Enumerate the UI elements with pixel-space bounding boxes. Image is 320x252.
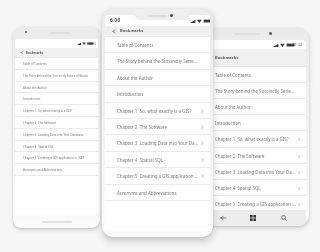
- staticText: Table of Contents: [117, 42, 198, 48]
- staticText: Chapter 5 Creating a GIS application i..…: [215, 201, 296, 207]
- staticText: Chapter 2 The Software: [215, 153, 296, 159]
- button[interactable]: Table of Contents: [105, 37, 210, 53]
- button[interactable]: Introduction: [15, 93, 98, 105]
- button[interactable]: Bookmarks: [15, 48, 98, 57]
- button[interactable]: Bookmarks: [105, 26, 210, 36]
- button[interactable]: Search: [276, 210, 292, 226]
- button[interactable]: Acronyms and Abbreviations: [200, 212, 306, 226]
- staticText: Acronyms and Abbreviations: [23, 168, 90, 172]
- staticText: Chapter 4 Spatial SQL: [215, 185, 296, 191]
- button[interactable]: Chapter 4 Spatial SQL: [15, 141, 98, 153]
- button[interactable]: Bookmarks: [200, 49, 306, 66]
- staticText: Chapter 4 Spatial SQL: [23, 145, 90, 149]
- staticText: Chapter 3 Loading Data into Your Dat...: [117, 140, 199, 146]
- staticText: Introduction: [117, 91, 198, 97]
- button[interactable]: Chapter 3 Loading Data into Your Dat...: [105, 135, 210, 151]
- button[interactable]: Chapter 5 Creating a GIS application i..…: [200, 196, 306, 212]
- staticText: About the Author: [23, 86, 90, 90]
- staticText: Chapter 1 So, what exactly is a GIS?: [117, 108, 199, 114]
- staticText: Table of Contents: [23, 62, 90, 66]
- button[interactable]: Back: [215, 210, 231, 226]
- button[interactable]: Chapter 2 The Software: [200, 148, 306, 164]
- button[interactable]: Chapter 4 Spatial SQL: [105, 152, 210, 168]
- staticText: Chapter 2 The Software: [23, 121, 90, 125]
- button[interactable]: The Story behind the Succinctly Series..…: [105, 53, 210, 69]
- button[interactable]: Table of Contents: [15, 58, 98, 70]
- button[interactable]: Acronyms and Abbreviations: [15, 164, 98, 176]
- staticText: Chapter 3 Loading Data into Your Dat...: [215, 169, 296, 175]
- staticText: Chapter 5 Creating a GIS application in …: [23, 156, 90, 160]
- button[interactable]: Acronyms and Abbreviations: [105, 185, 210, 201]
- button[interactable]: Chapter 4 Spatial SQL: [200, 180, 306, 196]
- staticText: 5:30: [90, 42, 96, 46]
- button[interactable]: Introduction: [105, 86, 210, 102]
- button[interactable]: Chapter 5 Creating a GIS application in …: [15, 152, 98, 164]
- staticText: Introduction: [23, 97, 90, 101]
- button[interactable]: The Story behind the Succinctly Series..…: [200, 83, 306, 99]
- staticText: Chapter 1 So, what exactly is a GIS?: [23, 109, 90, 113]
- staticText: Chapter 4 Spatial SQL: [117, 157, 199, 163]
- button[interactable]: Table of Contents: [200, 67, 306, 83]
- staticText: Bookmarks: [215, 55, 239, 61]
- staticText: Chapter 1 So, what exactly is a GIS?: [215, 136, 296, 142]
- staticText: Bookmarks: [26, 51, 44, 55]
- button[interactable]: Chapter 5 Creating a GIS application i..…: [105, 168, 210, 184]
- staticText: 17:32: [292, 42, 303, 48]
- staticText: The Story behind the Succinctly Series o…: [23, 74, 90, 78]
- button[interactable]: Home: [245, 210, 261, 226]
- button[interactable]: Chapter 2 The Software: [105, 119, 210, 135]
- button[interactable]: Chapter 1 So, what exactly is a GIS?: [200, 131, 306, 147]
- button[interactable]: Chapter 3 Loading Data into Your Databas…: [15, 129, 98, 141]
- staticText: The Story behind the Succinctly Series..…: [117, 58, 198, 64]
- button[interactable]: About the Author: [200, 99, 306, 115]
- staticText: Chapter 2 The Software: [117, 124, 199, 130]
- button[interactable]: Chapter 3 Loading Data into Your Dat...: [200, 164, 306, 180]
- staticText: About the Author: [117, 75, 198, 81]
- staticText: Acronyms and Abbreviations: [117, 190, 198, 196]
- staticText: 6.08: [110, 17, 121, 24]
- staticText: The Story behind the Succinctly Series..…: [215, 88, 295, 94]
- button[interactable]: Chapter 1 So, what exactly is a GIS?: [105, 103, 210, 119]
- button[interactable]: About the Author: [105, 70, 210, 86]
- button[interactable]: The Story behind the Succinctly Series o…: [15, 70, 98, 82]
- staticText: Table of Contents: [215, 72, 295, 78]
- button[interactable]: Chapter 1 So, what exactly is a GIS?: [15, 105, 98, 117]
- staticText: About the Author: [215, 104, 295, 110]
- button[interactable]: About the Author: [15, 82, 98, 94]
- staticText: Chapter 5 Creating a GIS application i..…: [117, 173, 199, 179]
- button[interactable]: Introduction: [200, 115, 306, 131]
- staticText: Chapter 3 Loading Data into Your Databas…: [23, 133, 90, 137]
- staticText: Introduction: [215, 120, 295, 126]
- staticText: Bookmarks: [120, 28, 144, 34]
- button[interactable]: Chapter 2 The Software: [15, 117, 98, 129]
- staticText: Acronyms and Abbreviations: [215, 217, 295, 223]
